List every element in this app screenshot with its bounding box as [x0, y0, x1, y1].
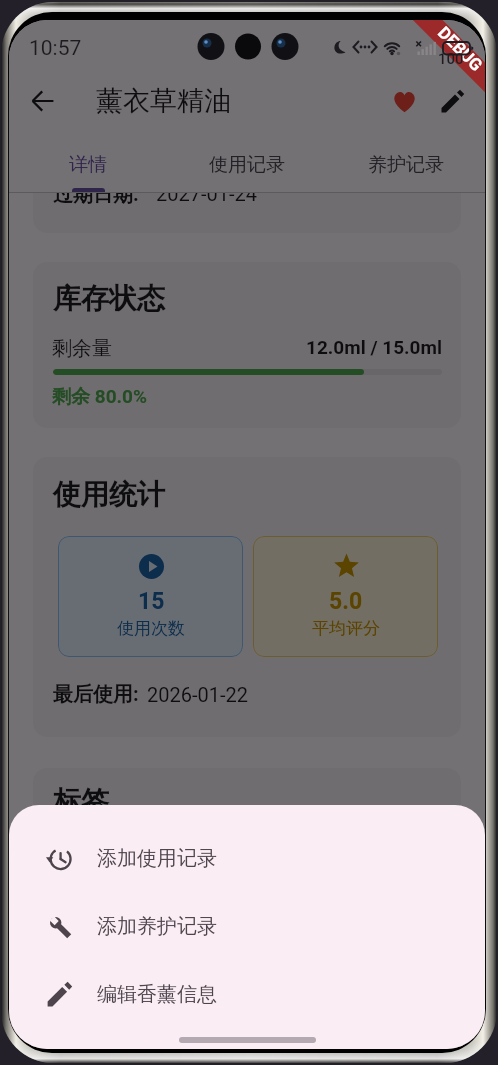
staticText: 养护记录: [368, 153, 444, 177]
button[interactable]: 添加使用记录: [9, 824, 485, 892]
staticText: 使用次数: [117, 618, 185, 639]
staticText: 薰衣草精油: [96, 84, 231, 118]
button[interactable]: 5.0: [253, 536, 438, 657]
staticText: 2026-01-22: [147, 683, 248, 706]
staticText: 使用记录: [209, 153, 285, 177]
button[interactable]: 15: [58, 536, 243, 657]
button[interactable]: Favourite: [380, 77, 428, 125]
button[interactable]: Edit: [428, 77, 476, 125]
staticText: 添加使用记录: [97, 846, 217, 871]
button[interactable]: 使用记录: [167, 132, 326, 193]
staticText: 使用统计: [53, 477, 165, 512]
staticText: 12.0ml / 15.0ml: [306, 336, 443, 358]
staticText: 2027-01-24: [156, 193, 257, 205]
staticText: 库存状态: [53, 281, 165, 316]
staticText: 5.0: [329, 588, 363, 615]
staticText: 添加养护记录: [97, 914, 217, 939]
staticText: 剩余 80.0%: [52, 385, 147, 409]
staticText: 15: [138, 588, 165, 615]
staticText: DEBUG: [434, 22, 485, 75]
button[interactable]: 添加养护记录: [9, 892, 485, 960]
staticText: 平均评分: [312, 618, 380, 639]
staticText: 标签: [53, 784, 109, 819]
button[interactable]: 详情: [9, 132, 167, 193]
staticText: 过期日期:: [53, 193, 139, 207]
button[interactable]: 养护记录: [326, 132, 485, 193]
staticText: 最后使用:: [53, 682, 139, 707]
staticText: 编辑香薰信息: [97, 982, 217, 1007]
staticText: 10:57: [29, 36, 82, 61]
staticText: 剩余量: [52, 336, 112, 361]
button[interactable]: Back: [19, 77, 67, 125]
staticText: 详情: [69, 153, 107, 177]
button[interactable]: 编辑香薰信息: [9, 960, 485, 1028]
staticText: 100: [438, 50, 464, 68]
